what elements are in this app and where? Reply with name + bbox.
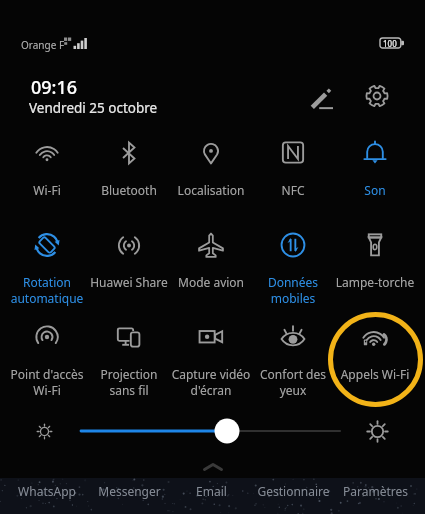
staticText: Paramètres (343, 483, 408, 499)
button[interactable]: Lampe-torche (334, 199, 416, 291)
button[interactable]: Messenger (88, 479, 170, 509)
button[interactable]: Gestionnaire (252, 479, 334, 509)
staticText: Données mobiles (252, 274, 334, 306)
staticText: 100 (383, 38, 397, 49)
staticText: Rotation automatique (6, 274, 88, 306)
button[interactable]: Wi-Fi (6, 107, 88, 199)
button[interactable]: Réduire le panneau (0, 454, 425, 480)
staticText: 09:16 (31, 75, 78, 100)
button[interactable]: Luminosité minimale (27, 414, 61, 448)
button[interactable]: Données mobiles (252, 199, 334, 291)
staticText: Mode avion (170, 274, 252, 290)
button[interactable]: Projection sans fil (88, 291, 170, 383)
staticText: Vendredi 25 octobre (29, 99, 158, 117)
button[interactable]: Point d'accès Wi-Fi (6, 291, 88, 383)
staticText: Orange F (21, 38, 65, 52)
button[interactable]: Bluetooth (88, 107, 170, 199)
button[interactable]: Localisation (170, 107, 252, 199)
button[interactable]: Huawei Share (88, 199, 170, 291)
staticText: WhatsApp (18, 483, 76, 499)
button[interactable]: Modifier les raccourcis (301, 77, 341, 117)
staticText: Huawei Share (88, 274, 170, 290)
button[interactable]: Son (334, 107, 416, 199)
staticText: Localisation (170, 182, 252, 198)
staticText: Lampe-torche (334, 274, 416, 290)
staticText: NFC (252, 182, 334, 198)
staticText: Gestionnaire (257, 483, 330, 499)
staticText: Messenger (98, 483, 161, 499)
staticText: Son (334, 182, 416, 198)
staticText: Confort des yeux (252, 366, 334, 398)
button[interactable]: Appels Wi-Fi (334, 291, 416, 383)
button[interactable]: NFC (252, 107, 334, 199)
staticText: Email (196, 483, 227, 499)
button[interactable]: Capture vidéo d'écran (170, 291, 252, 383)
staticText: Capture vidéo d'écran (170, 366, 252, 398)
button[interactable]: Email (170, 479, 252, 509)
staticText: Appels Wi-Fi (334, 366, 416, 382)
button[interactable]: Rotation automatique (6, 199, 88, 291)
button[interactable]: WhatsApp (6, 479, 88, 509)
button[interactable]: Paramètres (357, 76, 397, 116)
button[interactable]: Paramètres (334, 479, 416, 509)
staticText: Wi-Fi (6, 182, 88, 198)
staticText: Point d'accès Wi-Fi (6, 366, 88, 398)
button[interactable]: Luminosité automatique (360, 414, 394, 448)
button[interactable]: Confort des yeux (252, 291, 334, 383)
staticText: Projection sans fil (88, 366, 170, 398)
button[interactable]: Mode avion (170, 199, 252, 291)
staticText: Bluetooth (88, 182, 170, 198)
